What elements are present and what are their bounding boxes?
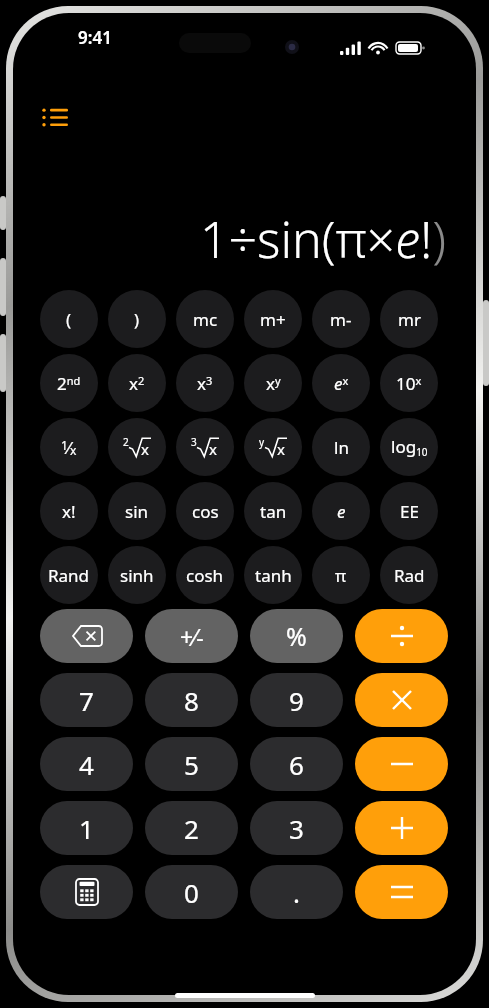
button[interactable]: EE (380, 482, 438, 540)
staticText: 9:41 (78, 26, 112, 49)
staticText: . (293, 875, 300, 910)
button[interactable]: ln (312, 418, 370, 476)
button[interactable]: Multiply (355, 673, 448, 727)
button[interactable]: 2 (145, 801, 238, 855)
button[interactable]: Plus minus (145, 609, 238, 663)
button[interactable]: one over x (40, 418, 98, 476)
button[interactable]: Percent (250, 609, 343, 663)
staticText: tanh (255, 564, 292, 587)
staticText: log10 (391, 435, 428, 459)
button[interactable]: e to the x (312, 354, 370, 412)
staticText: x (141, 439, 149, 459)
staticText: 2 (184, 811, 199, 846)
button[interactable]: log base 10 (380, 418, 438, 476)
button[interactable]: m- (312, 290, 370, 348)
button[interactable]: x to the y (244, 354, 302, 412)
button[interactable]: 2th root of x (108, 418, 166, 476)
button[interactable]: π (312, 546, 370, 604)
staticText: ) (134, 308, 140, 331)
staticText: cos (192, 500, 219, 523)
staticText: 1÷sin(π×e!) (200, 205, 447, 273)
staticText: y (259, 435, 265, 449)
button[interactable]: 6 (250, 737, 343, 791)
button[interactable]: sinh (108, 546, 166, 604)
staticText: 4 (79, 747, 94, 782)
button[interactable]: 3 (250, 801, 343, 855)
button[interactable]: mr (380, 290, 438, 348)
button[interactable]: mc (176, 290, 234, 348)
staticText: x (277, 439, 285, 459)
staticText: 2 (123, 435, 129, 449)
button[interactable]: Decimal point (250, 865, 343, 919)
staticText: e (337, 500, 346, 523)
button[interactable]: yth root of x (244, 418, 302, 476)
staticText: x2 (129, 372, 145, 395)
staticText: % (286, 619, 307, 653)
button[interactable]: tanh (244, 546, 302, 604)
staticText: 8 (184, 683, 199, 718)
button[interactable]: Divide (355, 609, 448, 663)
staticText: 3 (191, 435, 197, 449)
staticText: 3 (289, 811, 304, 846)
button[interactable]: x! (40, 482, 98, 540)
staticText: +⁄- (180, 621, 204, 652)
staticText: ln (334, 436, 349, 459)
staticText: xy (266, 372, 281, 395)
staticText: 1⁄x (61, 436, 77, 459)
button[interactable]: Calculator mode (40, 865, 133, 919)
button[interactable]: ( (40, 290, 98, 348)
staticText: 0 (184, 875, 199, 910)
staticText: mr (398, 308, 421, 331)
staticText: π (335, 564, 347, 587)
button[interactable]: e (312, 482, 370, 540)
staticText: 10x (396, 372, 422, 395)
button[interactable]: Rand (40, 546, 98, 604)
staticText: ex (334, 372, 349, 395)
button[interactable]: 4 (40, 737, 133, 791)
button[interactable]: History (34, 96, 78, 140)
button[interactable]: 8 (145, 673, 238, 727)
staticText: EE (400, 500, 419, 523)
staticText: tan (260, 500, 287, 523)
staticText: 9 (289, 683, 304, 718)
button[interactable]: cosh (176, 546, 234, 604)
button[interactable]: Plus (355, 801, 448, 855)
staticText: 1 (79, 811, 94, 846)
button[interactable]: cos (176, 482, 234, 540)
staticText: x (209, 439, 217, 459)
staticText: sinh (120, 564, 154, 587)
button[interactable]: tan (244, 482, 302, 540)
button[interactable]: m+ (244, 290, 302, 348)
staticText: cosh (186, 564, 224, 587)
button[interactable]: 10 to the x (380, 354, 438, 412)
staticText: m- (330, 308, 352, 331)
button[interactable]: Equals (355, 865, 448, 919)
staticText: x3 (197, 372, 213, 395)
button[interactable]: 0 (145, 865, 238, 919)
button[interactable]: 7 (40, 673, 133, 727)
button[interactable]: Delete (40, 609, 133, 663)
staticText: sin (125, 500, 149, 523)
staticText: mc (193, 308, 218, 331)
staticText: Rad (394, 564, 425, 587)
staticText: 6 (289, 747, 304, 782)
button[interactable]: Minus (355, 737, 448, 791)
staticText: x! (62, 500, 76, 523)
button[interactable]: 5 (145, 737, 238, 791)
button[interactable]: Rad (380, 546, 438, 604)
button[interactable]: x squared (108, 354, 166, 412)
staticText: m+ (260, 308, 286, 331)
staticText: 5 (184, 747, 199, 782)
button[interactable]: 9 (250, 673, 343, 727)
button[interactable]: 3th root of x (176, 418, 234, 476)
staticText: 7 (79, 683, 94, 718)
button[interactable]: x cubed (176, 354, 234, 412)
button[interactable]: ) (108, 290, 166, 348)
button[interactable]: 2nd (40, 354, 98, 412)
staticText: Rand (48, 564, 90, 587)
button[interactable]: 1 (40, 801, 133, 855)
button[interactable]: sin (108, 482, 166, 540)
staticText: ( (66, 308, 72, 331)
staticText: 2nd (57, 372, 81, 395)
